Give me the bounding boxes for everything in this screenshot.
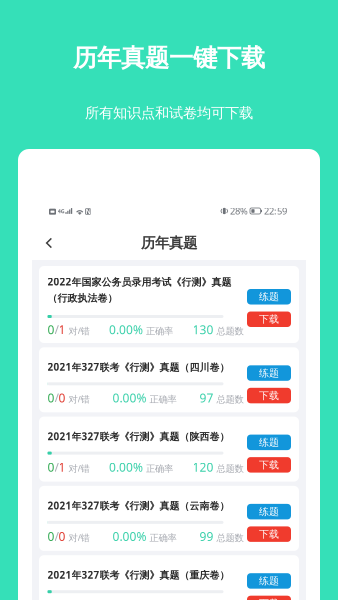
staticText: 对/错 <box>65 393 89 405</box>
staticText: 历年真题一键下载 <box>73 43 265 73</box>
button[interactable]: 练题 <box>247 289 291 304</box>
button[interactable]: 下载 <box>247 388 291 403</box>
button[interactable]: 2022年国家公务员录用考试《行测》真题 <box>39 266 299 343</box>
staticText: 2022年国家公务员录用考试《行测》真题 <box>47 275 231 288</box>
staticText: 1 <box>58 459 65 475</box>
staticText: N <box>85 207 90 216</box>
staticText: 2021年327联考《行测》真题（重庆卷） <box>47 568 229 582</box>
staticText: 28% <box>230 205 248 217</box>
staticText: 正确率 <box>146 393 176 405</box>
button[interactable]: 练题 <box>247 435 291 450</box>
staticText: 练题 <box>259 505 279 518</box>
staticText: 下载 <box>259 528 279 540</box>
staticText: 120 <box>192 459 213 475</box>
staticText: 对/错 <box>65 324 89 337</box>
staticText: 下载 <box>259 389 279 402</box>
staticText: 下载 <box>259 597 279 600</box>
staticText: 99 <box>199 528 213 544</box>
staticText: 0 <box>47 528 54 544</box>
staticText: 总题数 <box>213 463 243 474</box>
staticText: 0.00% <box>112 390 146 406</box>
button[interactable]: 练题 <box>247 573 291 589</box>
button[interactable]: 下载 <box>247 457 291 473</box>
staticText: 所有知识点和试卷均可下载 <box>85 104 253 122</box>
staticText: / <box>54 528 58 544</box>
button[interactable]: 2021年327联考《行测》真题（四川卷） <box>39 347 299 412</box>
staticText: 练题 <box>259 575 279 587</box>
staticText: 0 <box>47 459 54 475</box>
staticText: 总题数 <box>213 325 243 337</box>
staticText: 0 <box>58 390 65 406</box>
button[interactable]: 下载 <box>247 526 291 542</box>
staticText: 0.00% <box>109 321 143 338</box>
staticText: 对/错 <box>65 531 89 544</box>
staticText: 练题 <box>259 290 279 303</box>
staticText: 97 <box>199 390 213 406</box>
staticText: 练题 <box>259 367 279 379</box>
staticText: 下载 <box>259 459 279 471</box>
staticText: 练题 <box>259 436 279 449</box>
button[interactable]: 练题 <box>247 365 291 381</box>
button[interactable]: 下载 <box>247 596 291 600</box>
button[interactable]: 练题 <box>247 504 291 519</box>
staticText: / <box>54 459 58 475</box>
staticText: 总题数 <box>213 532 243 544</box>
staticText: 正确率 <box>143 325 173 337</box>
button[interactable]: 2021年327联考《行测》真题（陕西卷） <box>39 417 299 482</box>
button[interactable]: 2021年327联考《行测》真题（重庆卷） <box>39 555 299 600</box>
staticText: 0.00% <box>109 459 143 475</box>
staticText: 2021年327联考《行测》真题（四川卷） <box>47 360 229 374</box>
staticText: 1 <box>58 321 65 338</box>
staticText: 22:59 <box>264 205 287 217</box>
staticText: 正确率 <box>143 463 173 474</box>
staticText: / <box>54 321 58 338</box>
staticText: 2021年327联考《行测》真题（陕西卷） <box>47 430 229 443</box>
staticText: 2021年327联考《行测》真题（云南卷） <box>47 499 229 512</box>
staticText: 下载 <box>259 313 279 326</box>
staticText: 4G <box>58 207 65 215</box>
staticText: 对/错 <box>65 462 89 475</box>
button[interactable]: 下载 <box>247 311 291 327</box>
staticText: 0 <box>47 390 54 406</box>
staticText: 总题数 <box>213 393 243 405</box>
staticText: 历年真题 <box>141 234 197 252</box>
staticText: / <box>54 390 58 406</box>
staticText: （行政执法卷） <box>47 292 117 304</box>
staticText: 0 <box>58 528 65 544</box>
staticText: 0 <box>47 321 54 338</box>
staticText: 0.00% <box>112 528 146 544</box>
button[interactable]: 2021年327联考《行测》真题（云南卷） <box>39 486 299 551</box>
staticText: 正确率 <box>146 532 176 544</box>
button[interactable]: Back <box>40 234 58 252</box>
staticText: 130 <box>192 321 213 338</box>
